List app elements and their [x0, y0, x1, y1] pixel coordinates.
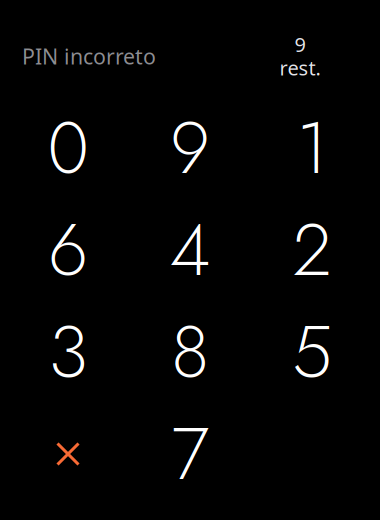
button[interactable]: 6: [7, 199, 129, 301]
staticText: 9: [294, 31, 305, 58]
button[interactable]: 7: [129, 403, 251, 505]
staticText: PIN incorreto: [22, 42, 156, 70]
staticText: 5: [292, 300, 332, 404]
button[interactable]: 0: [7, 97, 129, 199]
staticText: 2: [292, 198, 331, 302]
staticText: 1: [296, 96, 327, 200]
staticText: 7: [171, 402, 208, 506]
button[interactable]: Delete: [7, 403, 129, 505]
staticText: 9: [170, 96, 210, 200]
button[interactable]: 4: [129, 199, 251, 301]
button[interactable]: 8: [129, 301, 251, 403]
staticText: 6: [48, 198, 88, 302]
staticText: 4: [169, 198, 210, 302]
button[interactable]: 2: [251, 199, 373, 301]
button[interactable]: 9: [129, 97, 251, 199]
staticText: 8: [171, 300, 209, 404]
button[interactable]: 3: [7, 301, 129, 403]
button[interactable]: 1: [251, 97, 373, 199]
button[interactable]: 5: [251, 301, 373, 403]
staticText: 0: [47, 96, 88, 200]
staticText: rest.: [279, 55, 320, 81]
staticText: 3: [48, 300, 87, 404]
